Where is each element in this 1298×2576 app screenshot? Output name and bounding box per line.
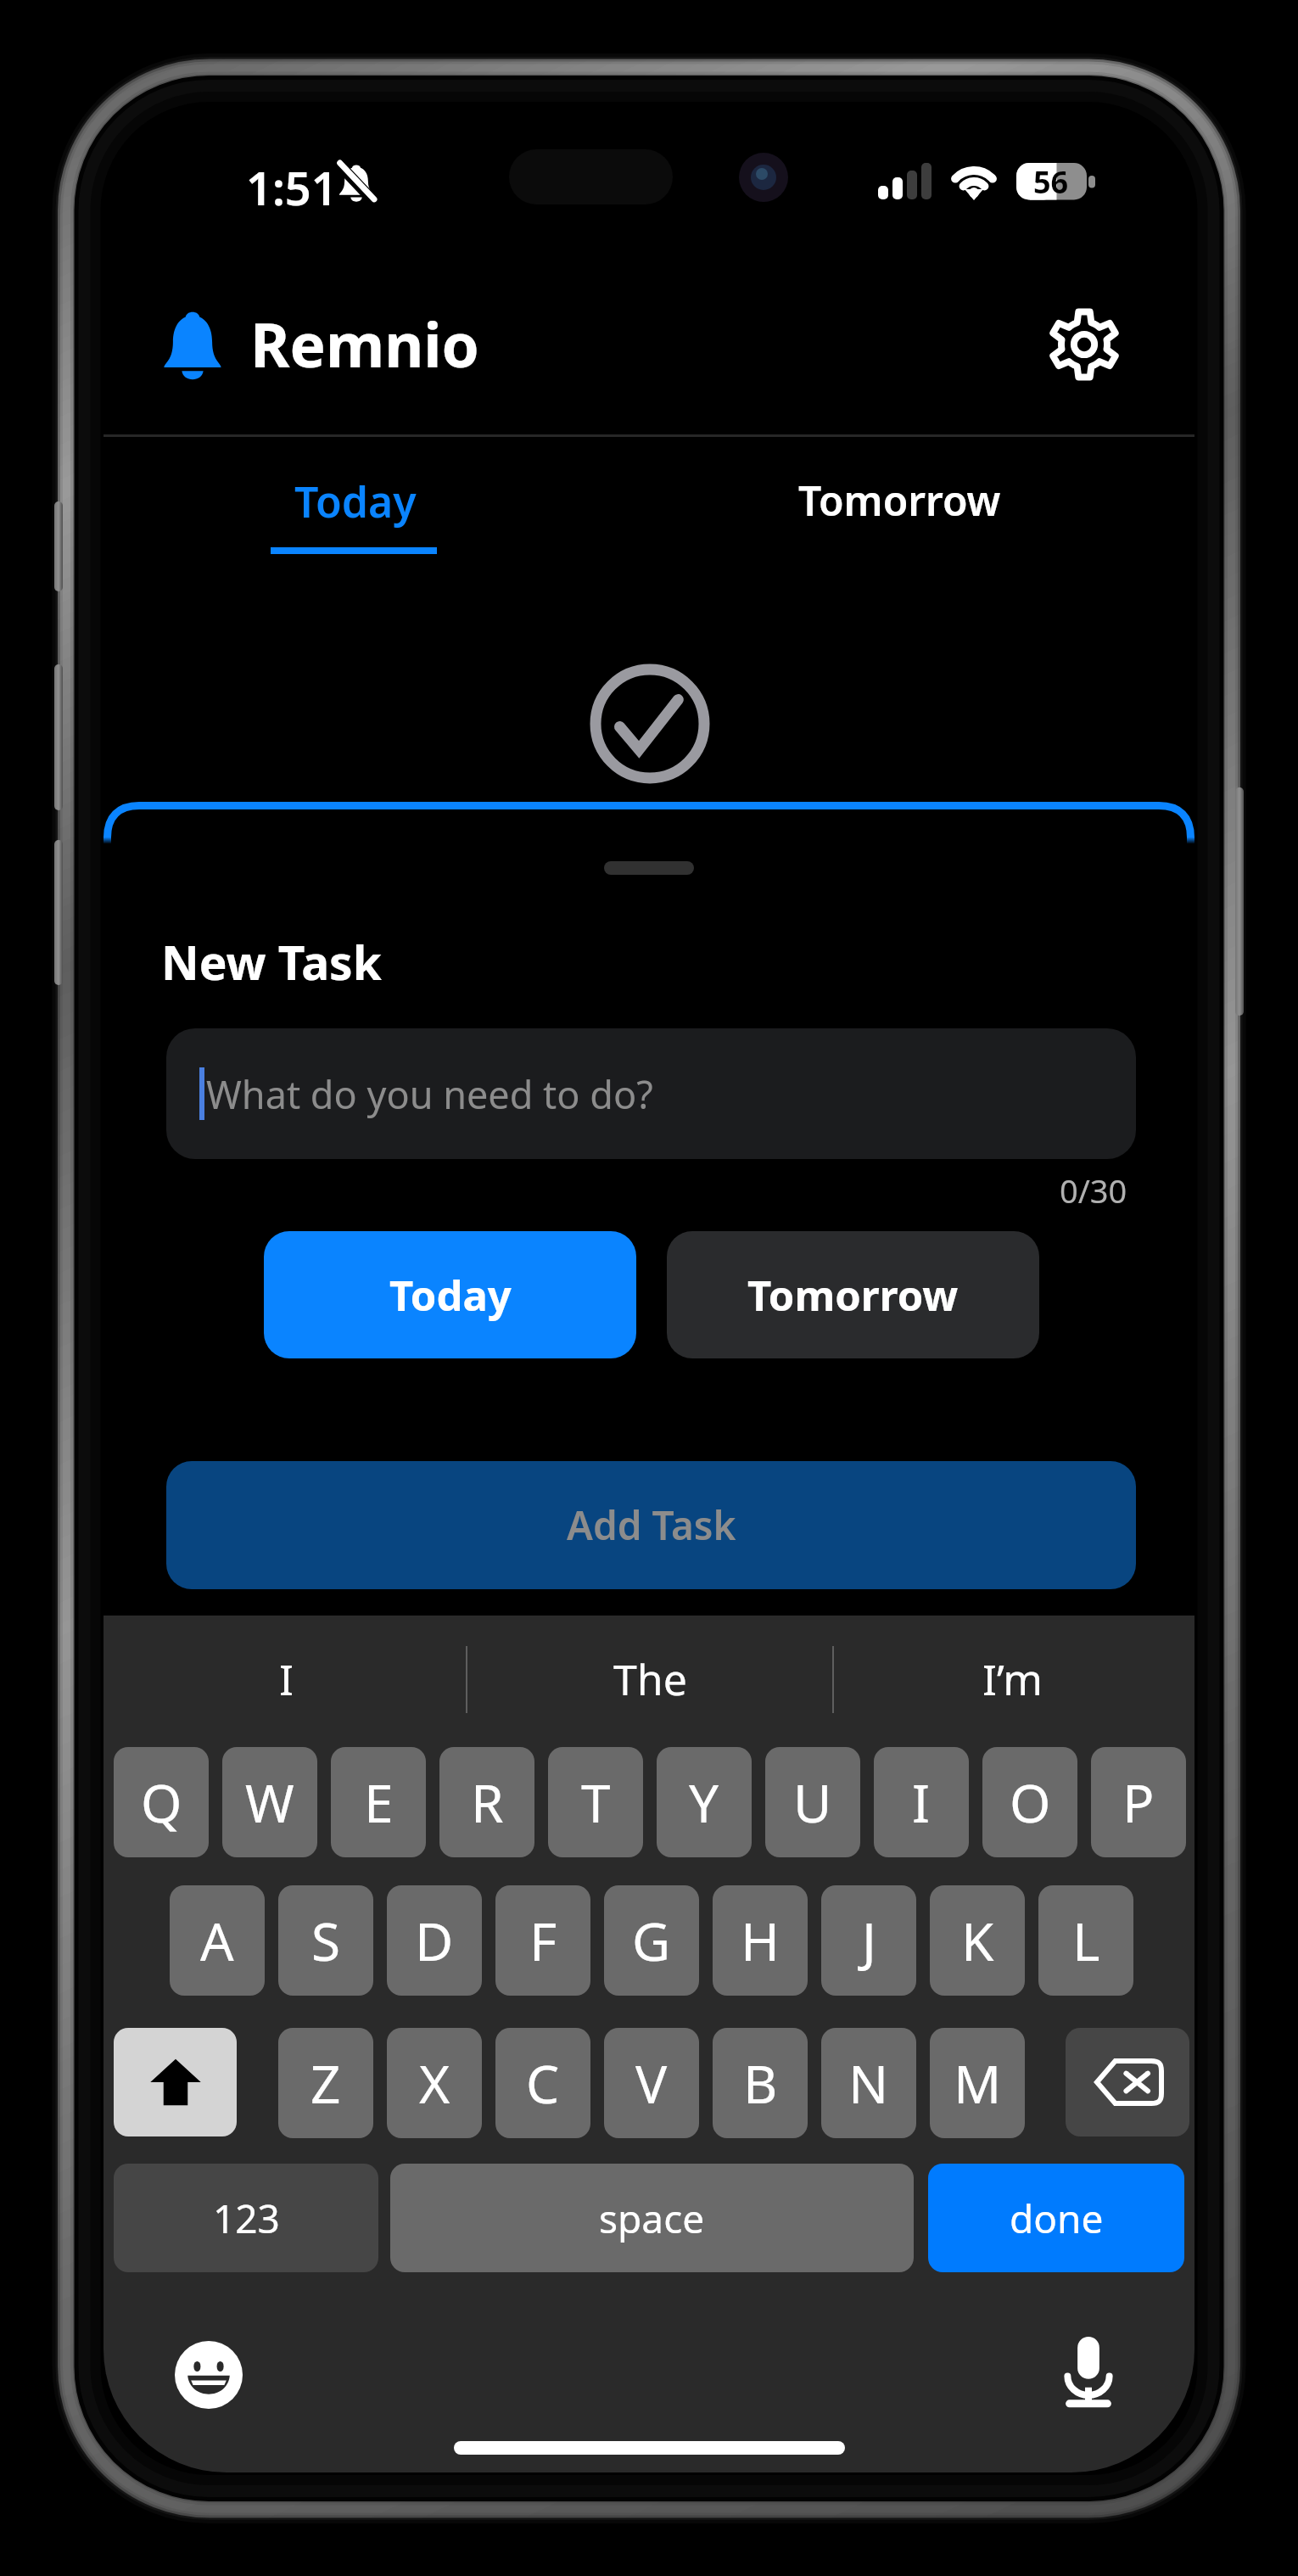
button[interactable]: Shift xyxy=(114,2028,237,2136)
staticText: Z xyxy=(311,2047,341,2119)
staticText: B xyxy=(743,2047,778,2119)
staticText: L xyxy=(1072,1905,1100,1976)
button[interactable]: I’m xyxy=(885,1632,1139,1726)
staticText: Today xyxy=(389,1267,512,1324)
staticText: D xyxy=(415,1905,454,1976)
staticText: space xyxy=(599,2192,705,2245)
button[interactable]: Today xyxy=(264,1231,636,1358)
staticText: N xyxy=(848,2047,889,2119)
staticText: R xyxy=(471,1767,504,1838)
button[interactable]: Q xyxy=(114,1747,209,1857)
staticText: I’m xyxy=(982,1650,1043,1708)
staticText: done xyxy=(1010,2192,1104,2245)
staticText: W xyxy=(245,1767,294,1838)
button[interactable]: What do you need to do? xyxy=(166,1028,1136,1159)
button[interactable]: A xyxy=(170,1885,265,1996)
button[interactable]: W xyxy=(222,1747,317,1857)
button[interactable]: Z xyxy=(278,2028,373,2138)
staticText: The xyxy=(613,1650,687,1708)
staticText: A xyxy=(200,1905,234,1976)
button[interactable]: Tomorrow xyxy=(667,1231,1039,1358)
staticText: F xyxy=(529,1905,557,1976)
button[interactable]: B xyxy=(713,2028,808,2138)
staticText: 56 xyxy=(1033,161,1069,203)
staticText: T xyxy=(581,1767,611,1838)
button[interactable]: Backspace xyxy=(1066,2028,1189,2136)
staticText: Remnio xyxy=(250,303,479,385)
staticText: 123 xyxy=(213,2192,280,2245)
staticText: Add Task xyxy=(567,1498,736,1552)
button[interactable]: Today xyxy=(104,443,629,570)
button[interactable]: L xyxy=(1038,1885,1133,1996)
button[interactable]: J xyxy=(821,1885,916,1996)
staticText: M xyxy=(954,2047,1002,2119)
button[interactable]: Add Task xyxy=(166,1461,1136,1589)
staticText: J xyxy=(862,1905,876,1976)
staticText: New Task xyxy=(161,930,382,994)
staticText: Today xyxy=(294,473,417,530)
button[interactable]: Dictation xyxy=(1054,2330,1123,2413)
staticText: What do you need to do? xyxy=(206,1068,653,1120)
button[interactable]: D xyxy=(387,1885,482,1996)
staticText: H xyxy=(741,1905,780,1976)
button[interactable]: I xyxy=(874,1747,969,1857)
button[interactable]: done xyxy=(928,2164,1184,2272)
button[interactable]: N xyxy=(821,2028,916,2138)
button[interactable]: F xyxy=(495,1885,590,1996)
button[interactable]: Tomorrow xyxy=(629,443,1194,570)
button[interactable]: The xyxy=(523,1632,777,1726)
staticText: S xyxy=(311,1905,341,1976)
staticText: V xyxy=(635,2047,668,2119)
staticText: E xyxy=(364,1767,394,1838)
button[interactable]: K xyxy=(930,1885,1025,1996)
button[interactable]: T xyxy=(548,1747,643,1857)
button[interactable]: E xyxy=(331,1747,426,1857)
button[interactable]: Emoji xyxy=(166,2332,251,2417)
staticText: Y xyxy=(689,1767,719,1838)
staticText: O xyxy=(1010,1767,1051,1838)
button[interactable]: 123 xyxy=(114,2164,378,2272)
staticText: G xyxy=(632,1905,671,1976)
staticText: K xyxy=(961,1905,994,1976)
button[interactable]: Settings xyxy=(1038,299,1130,390)
staticText: P xyxy=(1122,1767,1155,1838)
button[interactable]: space xyxy=(390,2164,914,2272)
button[interactable]: P xyxy=(1091,1747,1186,1857)
button[interactable]: V xyxy=(604,2028,699,2138)
button[interactable]: G xyxy=(604,1885,699,1996)
staticText: Tomorrow xyxy=(798,473,1001,528)
button[interactable]: X xyxy=(387,2028,482,2138)
staticText: I xyxy=(912,1767,931,1838)
button[interactable]: O xyxy=(982,1747,1077,1857)
button[interactable]: U xyxy=(765,1747,860,1857)
button[interactable]: S xyxy=(278,1885,373,1996)
button[interactable]: H xyxy=(713,1885,808,1996)
staticText: C xyxy=(526,2047,560,2119)
staticText: U xyxy=(793,1767,832,1838)
button[interactable]: R xyxy=(439,1747,534,1857)
button[interactable]: Y xyxy=(657,1747,752,1857)
staticText: 1:51 xyxy=(246,156,338,219)
button[interactable]: M xyxy=(930,2028,1025,2138)
staticText: I xyxy=(279,1650,294,1708)
staticText: Tomorrow xyxy=(747,1267,959,1324)
staticText: 0/30 xyxy=(1060,1168,1127,1212)
staticText: X xyxy=(419,2047,450,2119)
button[interactable]: I xyxy=(159,1632,413,1726)
staticText: Q xyxy=(141,1767,182,1838)
button[interactable]: C xyxy=(495,2028,590,2138)
